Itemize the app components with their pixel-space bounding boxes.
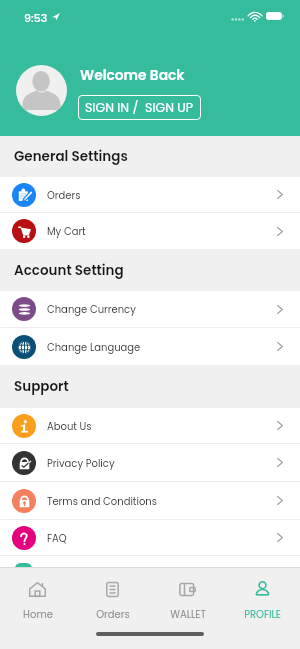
staticText: Change Language bbox=[47, 340, 141, 354]
staticText: WALLET bbox=[170, 607, 206, 621]
button[interactable]: WALLET bbox=[150, 568, 225, 621]
staticText: 9:53 bbox=[24, 10, 48, 25]
button[interactable]: Home bbox=[0, 568, 75, 621]
staticText: SIGN IN / SIGN UP bbox=[85, 99, 194, 116]
button[interactable]: Change Currency bbox=[0, 291, 300, 327]
button[interactable]: Orders bbox=[0, 177, 300, 212]
staticText: PROFILE bbox=[244, 607, 281, 621]
staticText: My Cart bbox=[47, 224, 86, 238]
button[interactable]: PROFILE bbox=[225, 568, 300, 621]
staticText: Account Setting bbox=[14, 261, 124, 280]
button[interactable]: Terms and Conditions bbox=[0, 482, 300, 519]
staticText: Home bbox=[23, 607, 53, 621]
staticText: Change Currency bbox=[47, 302, 136, 316]
button[interactable]: FAQ bbox=[0, 520, 300, 555]
button[interactable]: About Us bbox=[0, 408, 300, 443]
staticText: Orders bbox=[47, 188, 81, 202]
staticText: Welcome Back bbox=[80, 66, 185, 85]
button[interactable]: Orders bbox=[75, 568, 150, 621]
button[interactable]: Change Language bbox=[0, 328, 300, 365]
staticText: General Settings bbox=[14, 147, 128, 166]
staticText: FAQ bbox=[47, 531, 67, 545]
staticText: Privacy Policy bbox=[47, 456, 115, 470]
staticText: Support bbox=[14, 377, 69, 396]
button[interactable]: Privacy Policy bbox=[0, 444, 300, 481]
staticText: Terms and Conditions bbox=[47, 494, 157, 508]
staticText: About Us bbox=[47, 419, 92, 433]
staticText: Orders bbox=[96, 607, 130, 621]
button[interactable]: My Cart bbox=[0, 213, 300, 249]
button[interactable]: SIGN IN / SIGN UP bbox=[78, 95, 201, 120]
